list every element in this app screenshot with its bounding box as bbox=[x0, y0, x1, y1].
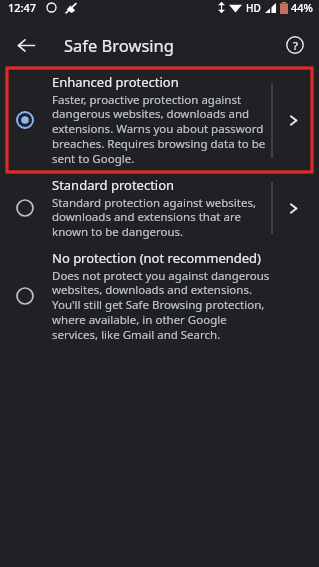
button[interactable]: Enhanced protection bbox=[0, 68, 319, 172]
staticText: Standard protection bbox=[52, 176, 175, 194]
button[interactable]: Back bbox=[10, 29, 42, 61]
staticText: Standard protection against websites, do… bbox=[52, 195, 267, 240]
button[interactable]: More details about Standard protection bbox=[279, 194, 307, 222]
button[interactable]: No protection (not recommended) bbox=[0, 244, 319, 348]
staticText: Safe Browsing bbox=[64, 34, 174, 56]
staticText: Faster, proactive protection against dan… bbox=[52, 92, 267, 167]
staticText: No protection (not recommended) bbox=[52, 249, 262, 267]
staticText: Does not protect you against dangerous w… bbox=[52, 268, 271, 343]
staticText: ? bbox=[293, 38, 298, 53]
button[interactable]: Standard protection bbox=[0, 172, 319, 244]
staticText: HD bbox=[246, 1, 261, 15]
button[interactable]: Help bbox=[279, 29, 311, 61]
staticText: Enhanced protection bbox=[52, 73, 179, 91]
staticText: 12:47 bbox=[8, 0, 37, 15]
staticText: 44% bbox=[291, 0, 313, 15]
button[interactable]: More details about Enhanced protection bbox=[279, 106, 307, 134]
